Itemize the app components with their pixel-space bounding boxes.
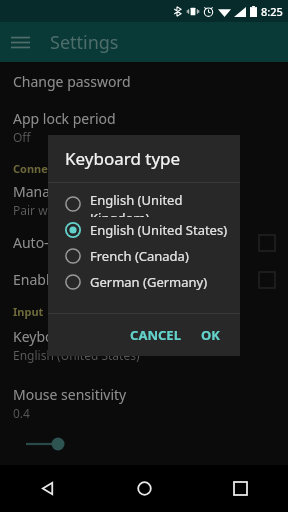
button[interactable]: Keyboard type (0, 325, 288, 365)
button[interactable]: French (Canada) (48, 243, 240, 269)
staticText: Connect (13, 161, 59, 176)
staticText: Mouse sensitivity (13, 385, 127, 404)
button[interactable]: OK (195, 320, 226, 350)
staticText: Enable discovery (13, 270, 259, 289)
button[interactable]: English (United Kingdom) (48, 191, 240, 217)
button[interactable]: App lock period (0, 107, 288, 147)
staticText: English (United States) (13, 347, 140, 363)
staticText: App lock period (13, 109, 116, 128)
button[interactable]: Open navigation menu (0, 22, 288, 62)
staticText: Settings (50, 30, 119, 55)
staticText: English (United Kingdom) (90, 191, 240, 217)
button[interactable]: Home (96, 465, 192, 512)
staticText: Change password (13, 72, 131, 91)
button[interactable]: Mouse sensitivity slider (0, 433, 288, 455)
button[interactable]: English (United States) (48, 217, 240, 243)
button[interactable]: Mouse sensitivity (0, 383, 288, 423)
staticText: Keyboard type (65, 147, 181, 170)
staticText: Manage devices (13, 182, 119, 201)
staticText: Input (13, 304, 44, 319)
staticText: Keyboard type (13, 327, 108, 346)
button[interactable]: Recent apps (192, 465, 288, 512)
button[interactable]: German (Germany) (48, 269, 240, 295)
staticText: Auto-connect (13, 233, 259, 252)
staticText: German (Germany) (90, 273, 208, 291)
button[interactable]: Enable discovery (0, 267, 288, 292)
button[interactable]: CANCEL (124, 320, 187, 350)
button[interactable]: Back (0, 465, 96, 512)
button[interactable]: Manage devices (0, 180, 288, 220)
button[interactable]: Change password (0, 70, 288, 93)
staticText: English (United States) (90, 221, 228, 239)
staticText: CANCEL (130, 326, 181, 344)
staticText: French (Canada) (90, 247, 189, 265)
staticText: Off (13, 129, 31, 145)
button[interactable]: Open navigation menu (0, 22, 40, 62)
staticText: 8:25 (261, 4, 283, 19)
button[interactable]: Auto-connect (0, 230, 288, 255)
staticText: 0.4 (13, 405, 30, 421)
staticText: OK (201, 326, 220, 344)
staticText: Pair with new devices (13, 202, 134, 218)
